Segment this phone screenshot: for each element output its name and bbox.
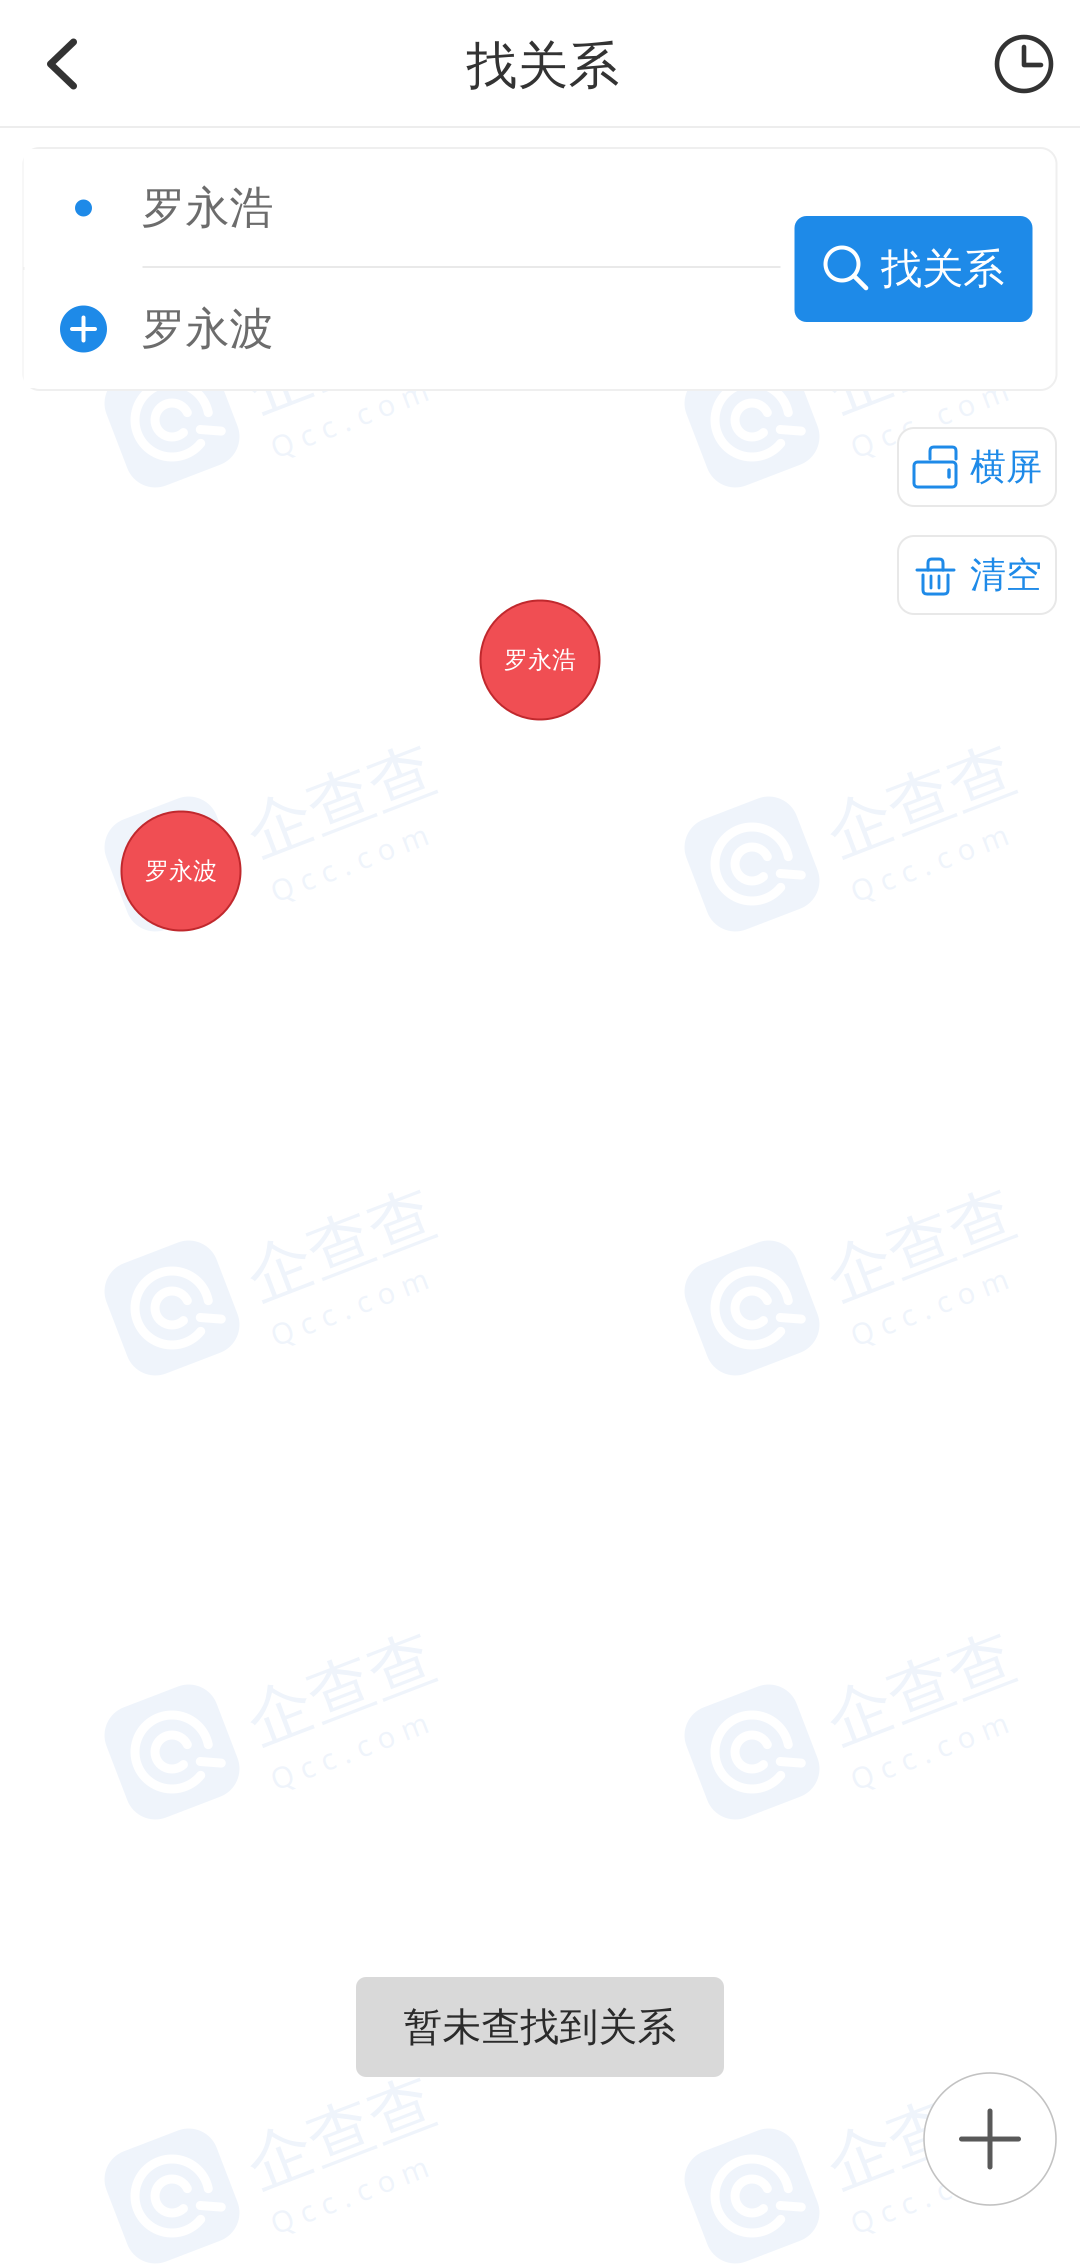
staticText: 企查查 <box>250 1648 445 1729</box>
staticText: 横屏 <box>970 445 1042 489</box>
button[interactable]: 返回 <box>2 1 122 127</box>
button[interactable]: 历史记录 <box>969 1 1079 127</box>
button[interactable]: 添加 <box>924 2073 1056 2205</box>
button[interactable]: 罗永浩 <box>23 149 783 267</box>
button[interactable]: 罗永波 <box>121 811 240 930</box>
staticText: 找关系 <box>466 35 619 97</box>
staticText: Q c c . c o m <box>250 2173 416 2212</box>
staticText: Q c c . c o m <box>830 1285 996 1324</box>
staticText: Q c c . c o m <box>830 2173 996 2212</box>
staticText: 罗永波 <box>141 302 273 356</box>
staticText: 企查查 <box>250 2092 445 2173</box>
button[interactable]: 横屏 <box>898 428 1056 506</box>
staticText: Q c c . c o m <box>830 1729 996 1768</box>
button[interactable]: 找关系 <box>794 216 1032 322</box>
staticText: Q c c . c o m <box>830 397 996 436</box>
staticText: Q c c . c o m <box>250 1285 416 1324</box>
staticText: 罗永浩 <box>141 181 273 235</box>
staticText: 清空 <box>970 553 1042 597</box>
staticText: Q c c . c o m <box>830 841 996 880</box>
staticText: 罗永浩 <box>504 645 576 675</box>
button[interactable]: 罗永波 <box>23 270 783 388</box>
staticText: 企查查 <box>830 316 1025 397</box>
staticText: 企查查 <box>830 1204 1025 1285</box>
staticText: Q c c . c o m <box>250 397 416 436</box>
staticText: Q c c . c o m <box>250 1729 416 1768</box>
staticText: 找关系 <box>881 244 1004 294</box>
staticText: 企查查 <box>250 1204 445 1285</box>
staticText: 企查查 <box>830 1648 1025 1729</box>
staticText: Q c c . c o m <box>250 841 416 880</box>
button[interactable]: 罗永浩 <box>480 600 599 719</box>
staticText: 罗永波 <box>145 856 217 886</box>
staticText: 企查查 <box>250 760 445 841</box>
staticText: 企查查 <box>250 316 445 397</box>
staticText: 企查查 <box>830 2092 1025 2173</box>
staticText: 企查查 <box>830 760 1025 841</box>
staticText: 暂未查找到关系 <box>403 2003 676 2051</box>
button[interactable]: 清空 <box>898 536 1056 614</box>
